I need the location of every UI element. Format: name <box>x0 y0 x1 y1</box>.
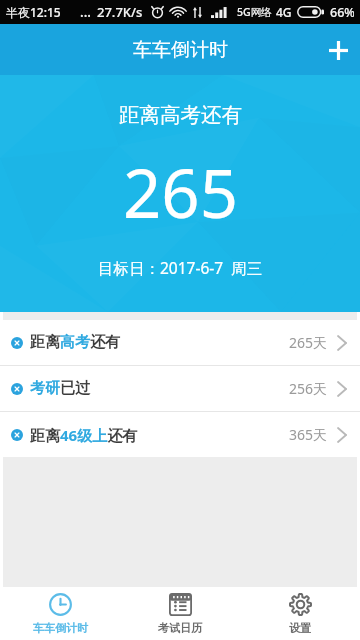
button[interactable]: 距离46级上还有 <box>0 412 360 457</box>
button[interactable]: 距离高考还有 <box>0 320 360 365</box>
button[interactable]: Add countdown <box>312 26 360 74</box>
staticText: 265 <box>123 146 238 237</box>
staticText: 256天 <box>289 379 328 398</box>
staticText: 距离高考还有 <box>119 102 242 128</box>
button[interactable]: 考研已过 <box>0 366 360 411</box>
staticText: 考研已过 <box>30 379 90 398</box>
staticText: 半夜12:15 <box>6 4 61 20</box>
staticText: 距离高考还有 <box>30 333 120 352</box>
staticText: 车车倒计时 <box>33 621 88 635</box>
staticText: 考试日历 <box>158 621 202 635</box>
staticText: 设置 <box>289 621 311 635</box>
staticText: 目标日：2017-6-7 周三 <box>98 257 263 278</box>
button[interactable]: Countdown <box>0 587 120 640</box>
staticText: 4G <box>276 4 292 20</box>
button[interactable]: Exam calendar <box>120 587 240 640</box>
staticText: 66% <box>330 4 354 21</box>
button[interactable]: Settings <box>240 587 360 640</box>
staticText: ... <box>80 3 92 21</box>
staticText: 5G网络 <box>237 5 272 19</box>
staticText: 265天 <box>289 333 328 352</box>
staticText: 365天 <box>289 425 328 444</box>
staticText: 车车倒计时 <box>133 38 228 62</box>
staticText: 27.7K/s <box>97 3 143 21</box>
staticText: 距离46级上还有 <box>30 425 138 445</box>
